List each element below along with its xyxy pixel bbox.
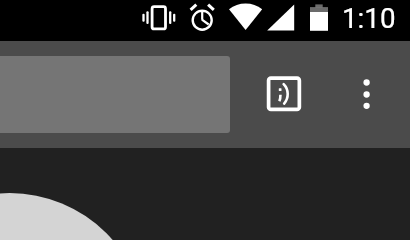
staticText: 1:10 <box>342 2 396 35</box>
button[interactable]: Insert emoticon <box>252 59 316 121</box>
button[interactable]: More options <box>350 63 384 125</box>
